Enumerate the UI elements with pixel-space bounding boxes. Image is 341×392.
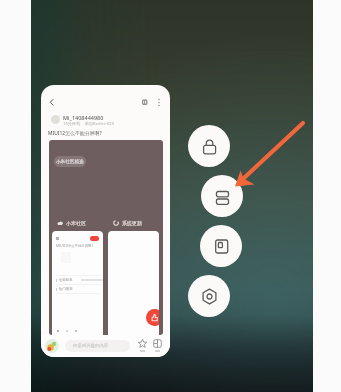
staticText: 全部回复 (59, 278, 73, 282)
staticText: Mi_1408444980 (63, 114, 104, 121)
staticText: MIUI12怎么不能分屏啊? (56, 243, 93, 248)
button[interactable]: Open in small window (200, 225, 242, 267)
button[interactable]: App settings (188, 275, 230, 317)
button[interactable]: Lock app (188, 125, 230, 167)
staticText: 搜索感兴趣的内容 (73, 343, 109, 349)
staticText: 小米社区 (66, 220, 86, 226)
staticText: 热门推荐 (59, 287, 73, 291)
staticText: 小米社区精选 (56, 159, 84, 165)
staticText: 15分钟前 来自Redmi K20 (63, 121, 115, 127)
staticText: 系统更新 (122, 220, 142, 226)
button[interactable]: Mi_1408444980 (41, 85, 170, 357)
staticText: MIUI12怎么不能分屏啊? (48, 130, 102, 137)
button[interactable]: Split screen (201, 175, 243, 217)
